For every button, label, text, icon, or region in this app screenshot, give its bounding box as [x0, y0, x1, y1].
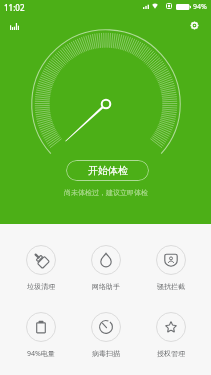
button[interactable]: 垃圾清理 [8, 245, 74, 292]
staticText: 94% [193, 2, 207, 12]
button[interactable]: 授权管理 [138, 312, 204, 359]
staticText: 尚未体检过，建议立即体检 [64, 188, 148, 197]
button[interactable]: 网络助手 [73, 245, 139, 292]
button[interactable]: Settings [182, 13, 207, 38]
button[interactable]: 94%电量 [8, 312, 74, 359]
button[interactable]: 骚扰拦截 [138, 245, 204, 292]
staticText: 94%电量 [27, 349, 55, 359]
button[interactable]: 病毒扫描 [73, 312, 139, 359]
staticText: 病毒扫描 [92, 349, 120, 358]
staticText: 骚扰拦截 [157, 282, 185, 291]
staticText: 11:02 [4, 2, 25, 13]
staticText: 网络助手 [92, 282, 120, 291]
staticText: 开始体检 [88, 164, 128, 177]
button[interactable]: Statistics [2, 14, 27, 39]
staticText: 授权管理 [157, 349, 185, 358]
button[interactable]: 开始体检 [66, 160, 149, 181]
staticText: 垃圾清理 [27, 282, 55, 291]
